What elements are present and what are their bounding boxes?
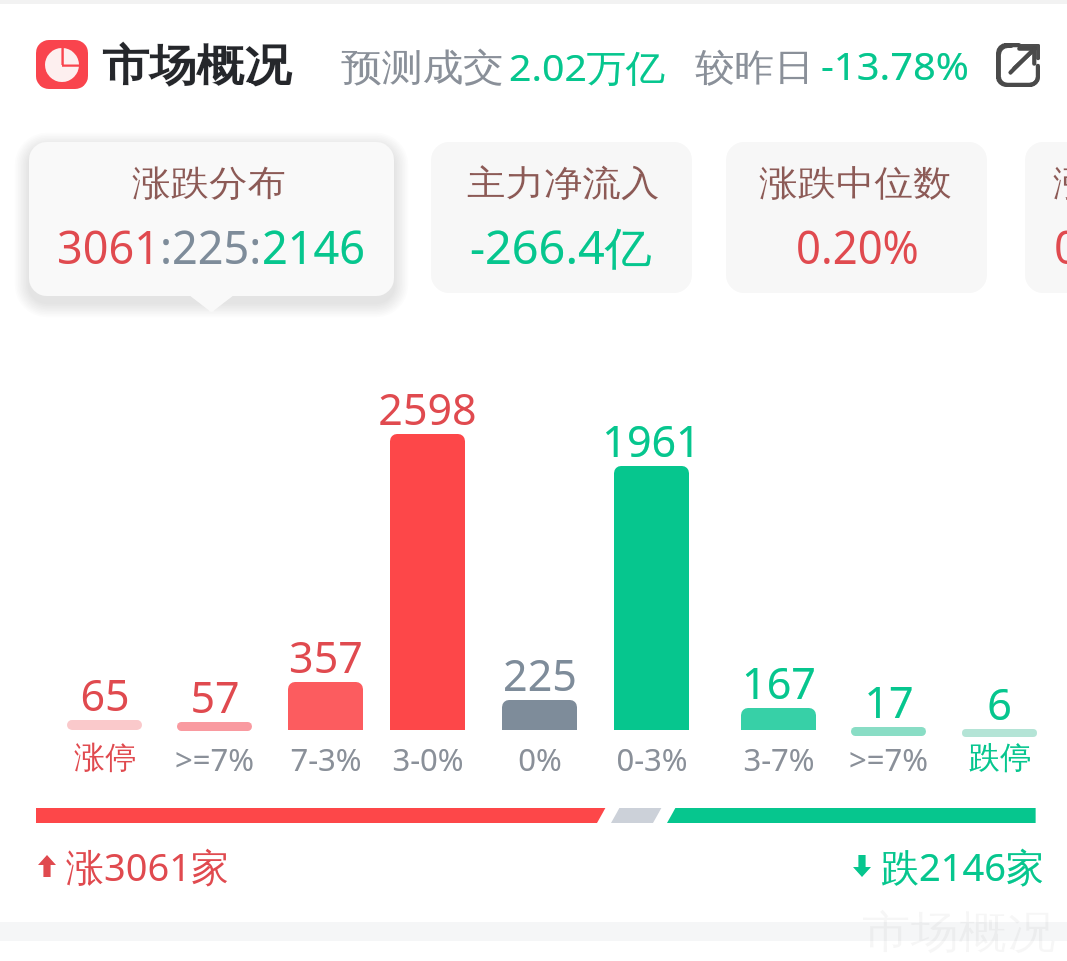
staticText: 3-7% [743,738,815,780]
button[interactable] [1025,142,1067,293]
staticText: -13.78% [821,39,969,91]
staticText: 2598 [378,379,477,438]
staticText: 65 [80,665,130,724]
staticText: 跌2146家 [881,840,1044,892]
button[interactable] [726,142,987,293]
button[interactable]: Open in new window [986,33,1050,97]
staticText: 17 [864,672,914,731]
staticText: 涨停 [74,738,136,777]
staticText: -266.4亿 [470,216,652,277]
staticText: 1961 [602,411,701,470]
staticText: 跌停 [969,738,1031,777]
button[interactable] [29,142,394,296]
staticText: 57 [190,667,240,726]
staticText: 0-3% [616,738,688,780]
staticText: 357 [289,627,363,686]
staticText: >=7% [849,738,928,780]
staticText: 167 [742,653,816,712]
button[interactable] [431,142,692,293]
staticText: 0% [518,738,562,780]
staticText: 2.02万亿 [509,41,666,92]
staticText: 涨3061家 [66,840,229,892]
staticText: 3-0% [392,738,464,780]
staticText: 225 [503,645,577,704]
staticText: 涨停家数 [1053,161,1067,205]
staticText: 7-3% [290,738,362,780]
staticText: 预测成交 [341,44,504,91]
staticText: 0.20% [796,216,919,277]
staticText: 3061 [57,216,160,277]
staticText: 涨跌中位数 [759,161,951,205]
button[interactable]: Open in new window [988,35,1048,95]
staticText: 涨跌分布 [132,161,286,205]
staticText: 0.93% [1054,216,1067,277]
staticText: >=7% [175,738,254,780]
staticText: 市场概况 [102,39,291,93]
button[interactable]: Market overview [36,40,88,89]
staticText: 主力净流入 [467,161,659,205]
staticText: 6 [987,674,1012,733]
staticText: 市场概况 [862,905,1056,960]
staticText: 较昨日 [695,44,814,91]
staticText: :225: [160,216,262,277]
staticText: 2146 [262,216,365,277]
